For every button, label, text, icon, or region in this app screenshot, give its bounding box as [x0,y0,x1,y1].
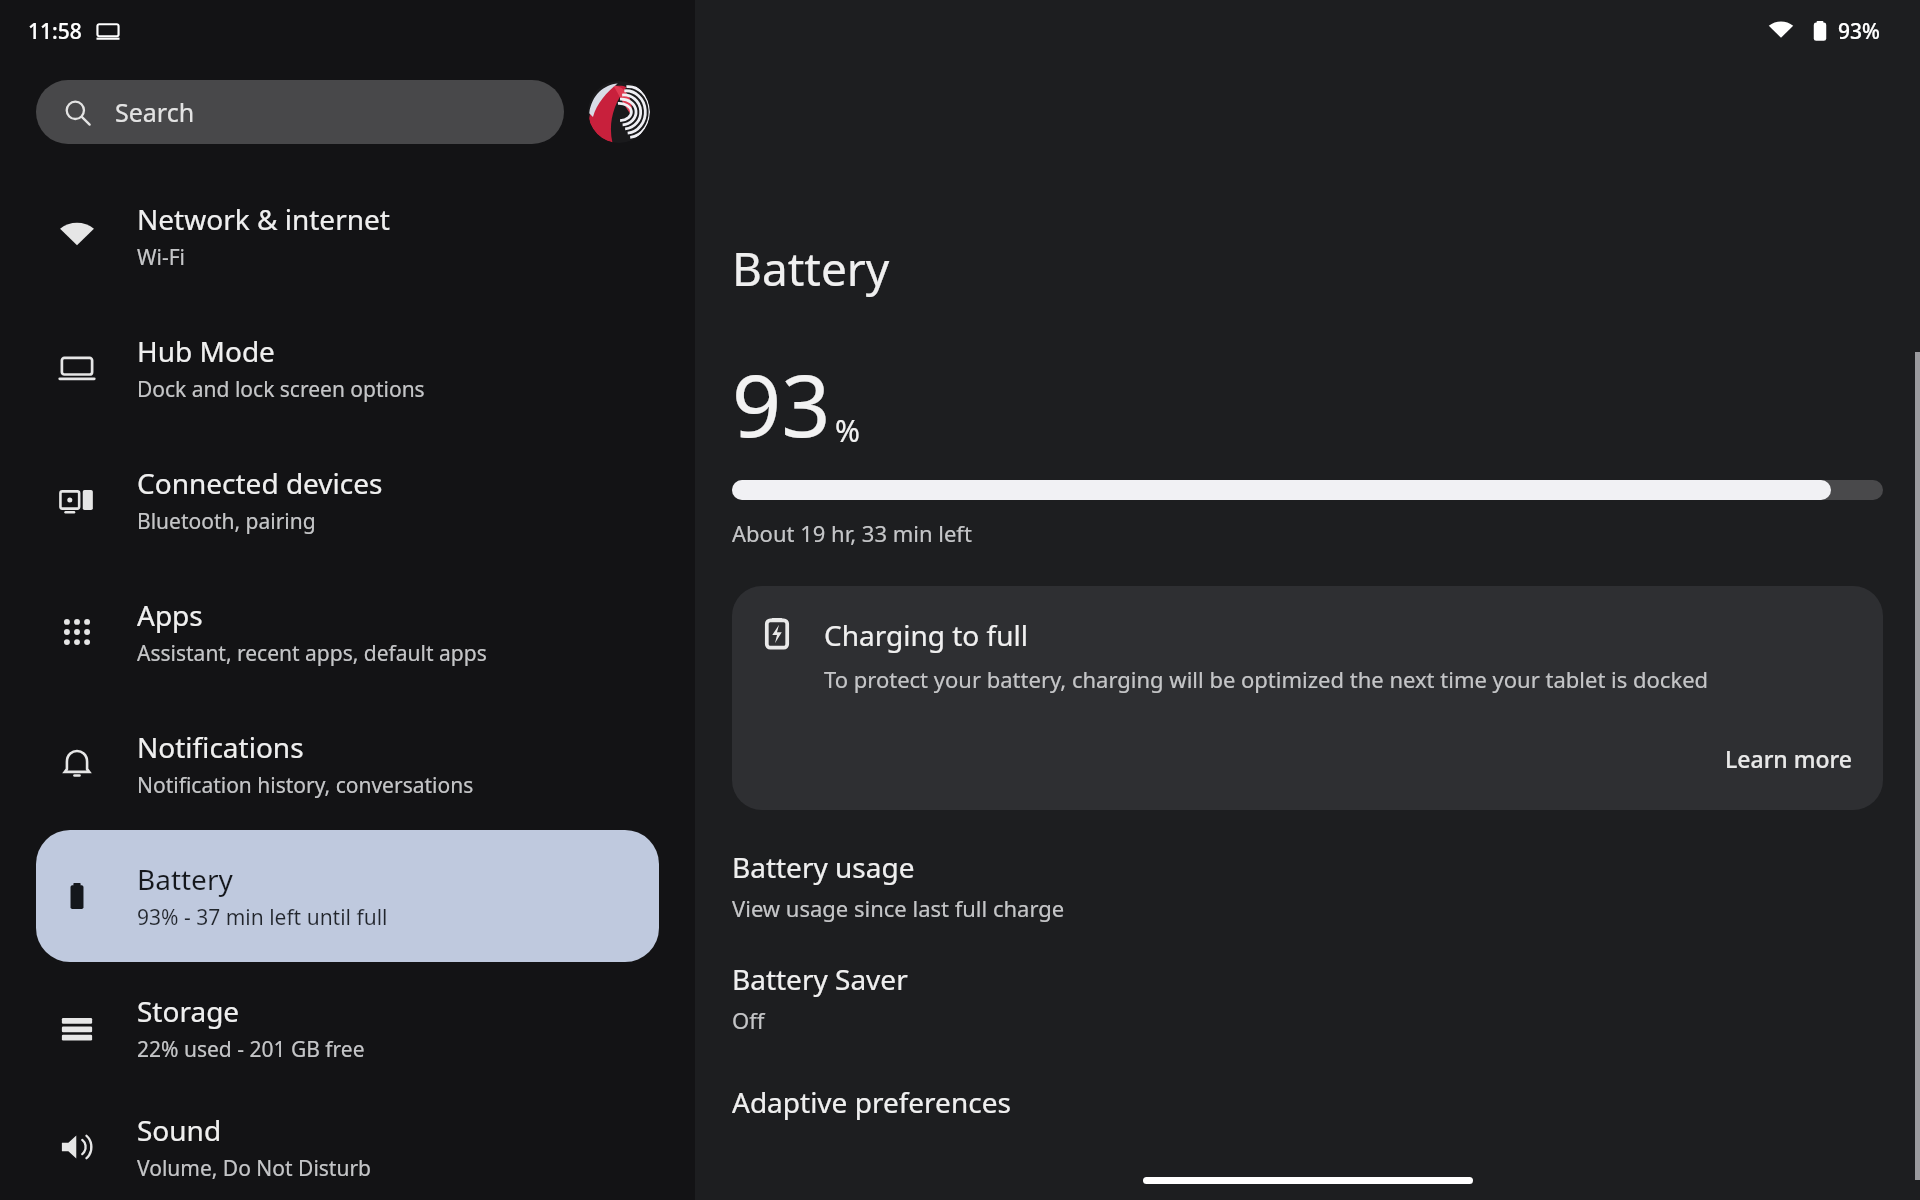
staticText: Apps [137,596,203,634]
staticText: 93% [1838,17,1880,46]
staticText: 93% - 37 min left until full [137,903,388,932]
staticText: Hub Mode [137,332,275,370]
button[interactable]: Adaptive preferences [732,1083,1883,1121]
staticText: Dock and lock screen options [137,375,425,404]
staticText: Battery usage [732,848,915,886]
staticText: Battery Saver [732,960,908,998]
staticText: Connected devices [137,464,383,502]
button[interactable]: Connected devices [36,434,659,566]
staticText: Network & internet [137,200,390,238]
staticText: Notifications [137,728,304,766]
staticText: Charging to full [824,616,1028,654]
staticText: Battery [137,860,233,898]
staticText: Battery [732,237,890,300]
staticText: Sound [137,1111,222,1149]
staticText: 11:58 [28,17,82,46]
button[interactable]: Hub Mode [36,302,659,434]
staticText: Adaptive preferences [732,1083,1011,1121]
button[interactable]: Search [36,80,564,144]
staticText: % [835,410,860,451]
staticText: About 19 hr, 33 min left [732,518,972,548]
button[interactable]: Sound [36,1094,659,1200]
button[interactable]: Charging to full [732,586,1883,810]
staticText: Search [115,95,195,129]
staticText: Bluetooth, pairing [137,507,316,536]
staticText: Notification history, conversations [137,771,474,800]
staticText: View usage since last full charge [732,893,1065,923]
button[interactable]: Battery [36,830,659,962]
staticText: 22% used - 201 GB free [137,1035,365,1064]
staticText: Volume, Do Not Disturb [137,1154,372,1183]
staticText: Storage [137,992,240,1030]
staticText: Assistant, recent apps, default apps [137,639,487,668]
staticText: Wi-Fi [137,243,186,272]
staticText: Off [732,1005,765,1035]
staticText: 93 [732,345,831,462]
staticText: Learn more [1725,743,1853,774]
button[interactable]: Account [588,81,650,143]
button[interactable]: Battery Saver [732,960,1883,1035]
button[interactable]: Notifications [36,698,659,830]
button[interactable]: Network & internet [36,170,659,302]
staticText: To protect your battery, charging will b… [824,664,1709,694]
button[interactable]: Learn more [1711,737,1867,780]
button[interactable]: Apps [36,566,659,698]
button[interactable]: Battery usage [732,848,1883,923]
button[interactable]: Storage [36,962,659,1094]
